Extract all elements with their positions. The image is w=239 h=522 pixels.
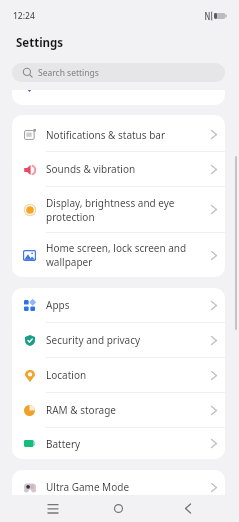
button[interactable]: Security and privacy [12,323,225,357]
staticText: Security and privacy [46,333,207,347]
button[interactable]: Sounds & vibration [12,152,225,186]
button[interactable]: Recent apps [29,495,76,522]
staticText: Display, brightness and eye protection [46,196,207,224]
staticText: Apps [46,298,207,312]
button[interactable]: Battery [12,428,225,459]
button[interactable]: RAM & storage [12,393,225,427]
button[interactable] [12,90,225,105]
staticText: Battery [46,437,207,451]
button[interactable]: Back [164,495,211,522]
staticText: Notifications & status bar [46,128,207,142]
button[interactable]: Location [12,358,225,392]
staticText: Ultra Game Mode [46,480,207,494]
button[interactable]: Home [95,495,142,522]
button[interactable]: Notifications & status bar [12,118,225,151]
staticText: 12:24 [13,10,35,22]
staticText: RAM & storage [46,403,207,417]
button[interactable]: Ultra Game Mode [12,470,225,504]
staticText: Sounds & vibration [46,162,207,176]
button[interactable]: Search settings [12,63,225,82]
staticText: Location [46,368,207,382]
button[interactable]: Display, brightness and eye protection [12,187,225,232]
staticText: Home screen, lock screen and wallpaper [46,241,207,269]
button[interactable]: Home screen, lock screen and wallpaper [12,233,225,277]
button[interactable]: Apps [12,288,225,322]
staticText: Settings [16,35,64,51]
staticText: Search settings [38,67,99,79]
